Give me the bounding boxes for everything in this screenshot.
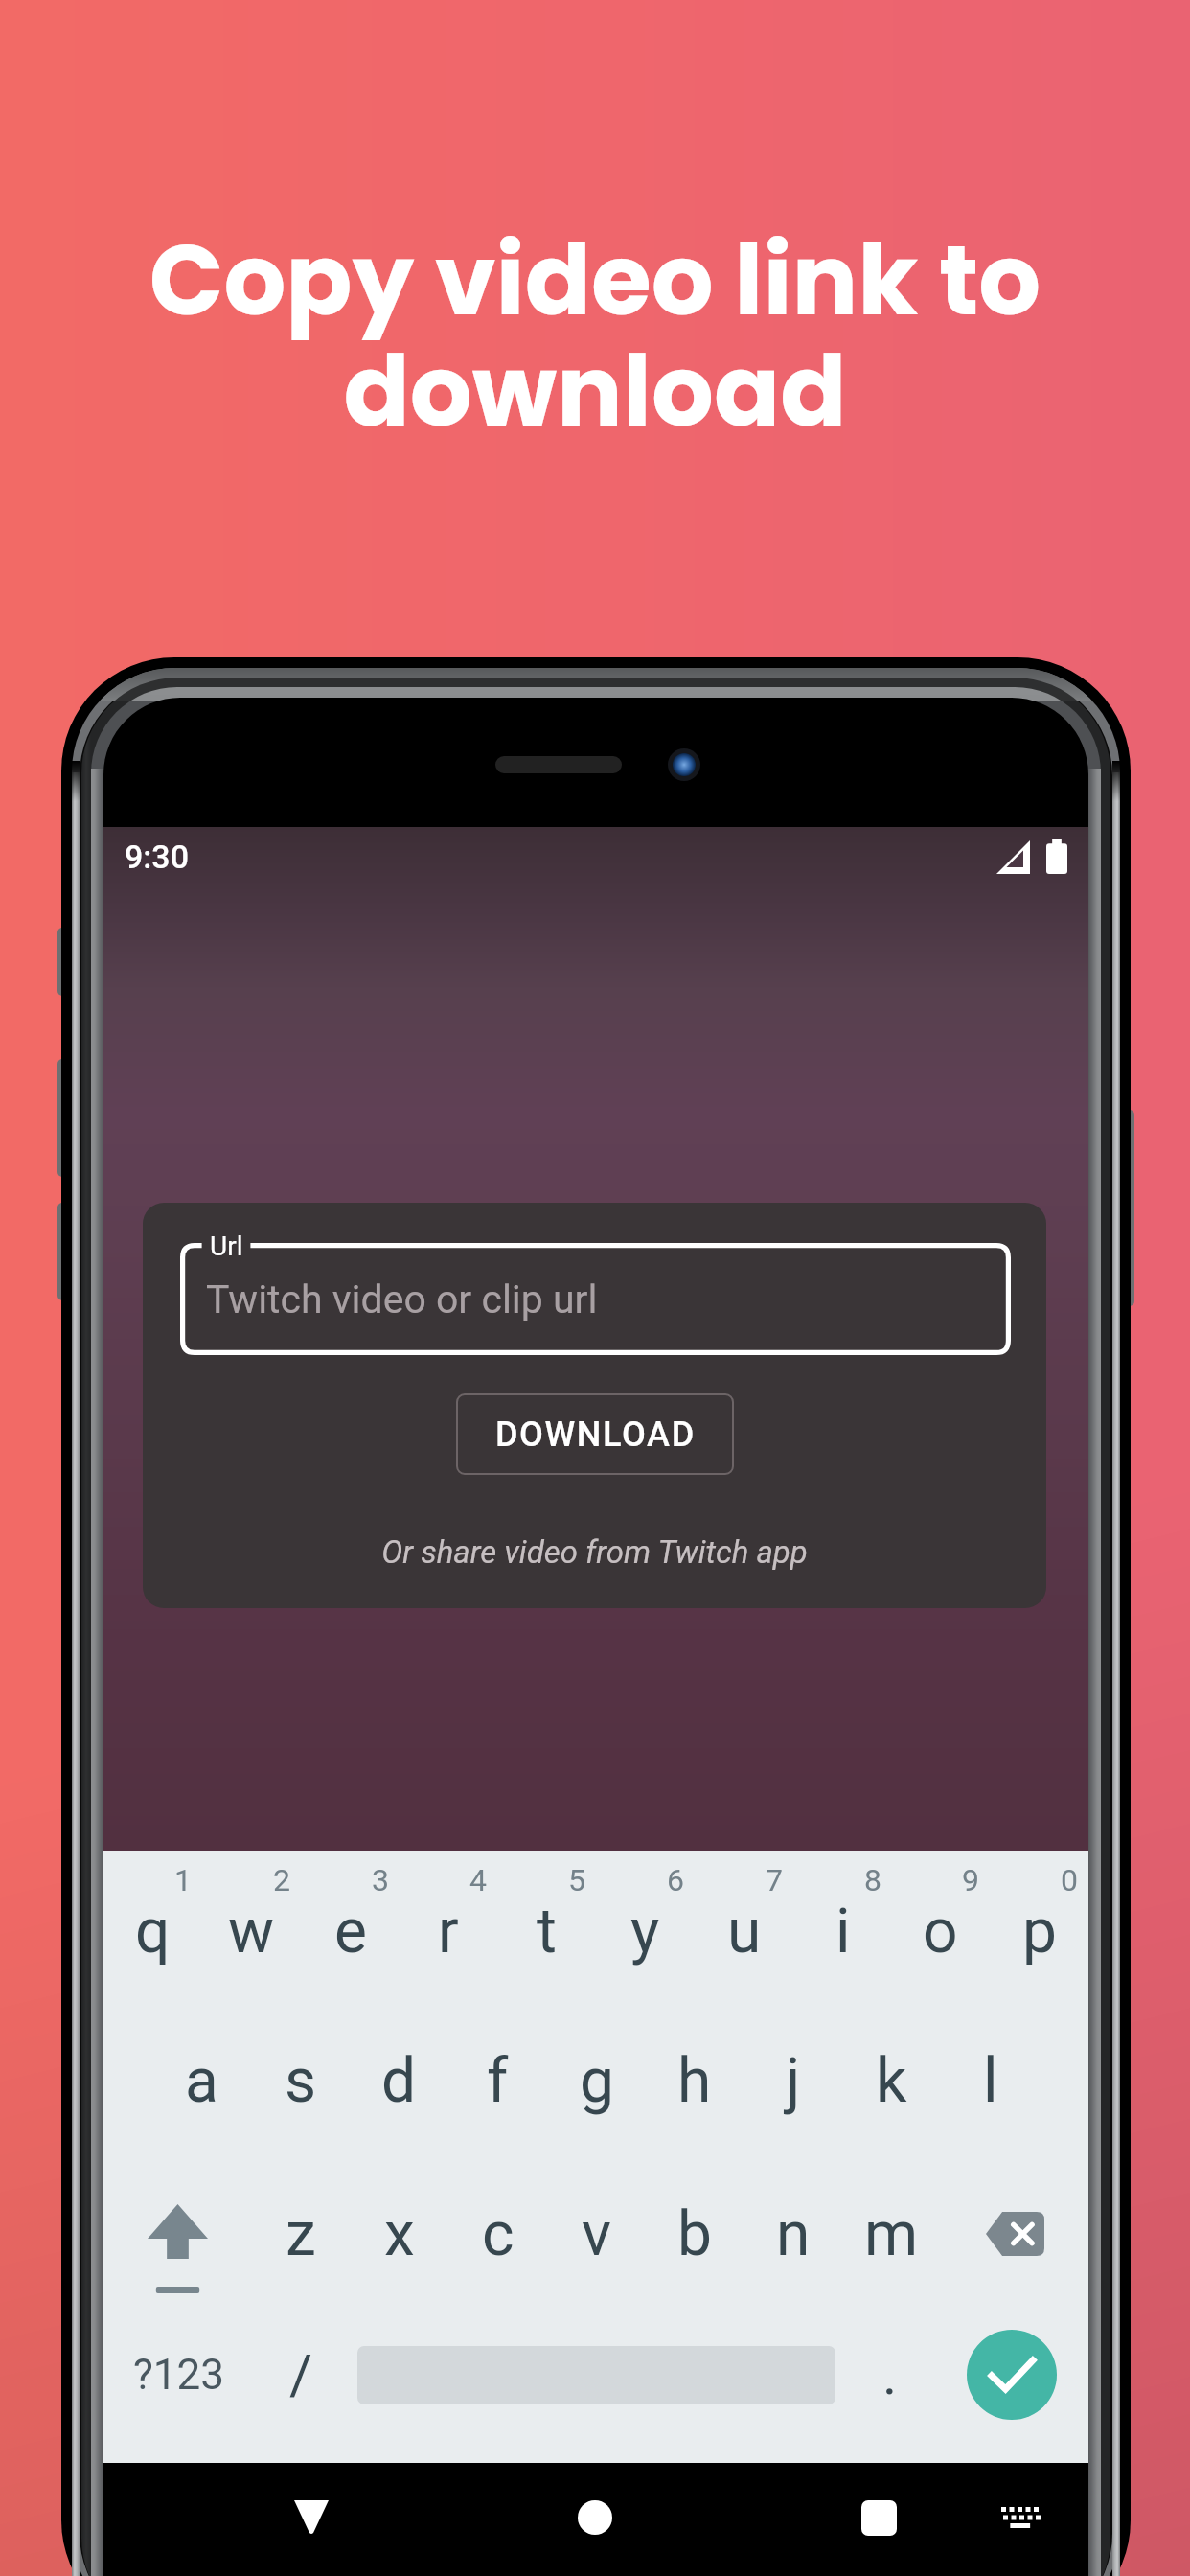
button[interactable]: Space (357, 2298, 835, 2451)
button[interactable]: ?123 (102, 2298, 255, 2451)
button[interactable]: 7 (695, 1851, 793, 2004)
staticText: m (864, 2198, 919, 2270)
staticText: o (923, 1896, 958, 1967)
staticText: q (135, 1896, 171, 1967)
staticText: 4 (469, 1862, 487, 1898)
button[interactable]: Twitch video or clip url (180, 1243, 1011, 1355)
button[interactable]: d (350, 2004, 448, 2157)
button[interactable]: Recent apps (783, 2464, 974, 2571)
staticText: i (835, 1896, 851, 1967)
button[interactable]: 0 (990, 1851, 1088, 2004)
staticText: . (882, 2342, 898, 2407)
staticText: n (776, 2198, 811, 2270)
staticText: 1 (174, 1862, 192, 1898)
staticText: c (482, 2198, 515, 2270)
staticText: f (487, 2045, 509, 2117)
button[interactable]: Back (216, 2464, 407, 2571)
staticText: Twitch video or clip url (206, 1276, 598, 1322)
button[interactable]: Switch keyboard (963, 2464, 1078, 2571)
button[interactable]: k (842, 2004, 941, 2157)
button[interactable]: h (645, 2004, 744, 2157)
button[interactable]: 9 (891, 1851, 990, 2004)
button[interactable]: / (253, 2298, 349, 2451)
staticText: 5 (568, 1862, 585, 1898)
button[interactable]: 5 (497, 1851, 596, 2004)
button[interactable]: f (448, 2004, 547, 2157)
staticText: w (228, 1896, 275, 1967)
staticText: y (630, 1896, 660, 1967)
staticText: v (582, 2198, 611, 2270)
button[interactable]: a (152, 2004, 251, 2157)
staticText: 9 (962, 1862, 979, 1898)
staticText: 7 (766, 1862, 783, 1898)
staticText: a (185, 2045, 218, 2117)
button[interactable]: v (547, 2157, 646, 2311)
staticText: u (727, 1896, 762, 1967)
staticText: j (786, 2045, 801, 2117)
button[interactable]: 6 (596, 1851, 695, 2004)
staticText: z (286, 2198, 316, 2270)
button[interactable]: c (448, 2157, 547, 2311)
staticText: s (285, 2045, 317, 2117)
staticText: Or share video from Twitch app (143, 1533, 1046, 1571)
button[interactable]: m (842, 2157, 941, 2311)
button[interactable]: j (744, 2004, 842, 2157)
staticText: 2 (273, 1862, 290, 1898)
button[interactable]: 3 (301, 1851, 400, 2004)
button[interactable]: DOWNLOAD (456, 1393, 734, 1475)
staticText: t (537, 1896, 557, 1967)
staticText: e (334, 1896, 367, 1967)
button[interactable]: . (842, 2298, 938, 2451)
staticText: 0 (1061, 1862, 1078, 1898)
staticText: DOWNLOAD (495, 1414, 696, 1455)
button[interactable]: l (941, 2004, 1040, 2157)
button[interactable]: b (645, 2157, 744, 2311)
staticText: 8 (864, 1862, 881, 1898)
button[interactable]: Shift (103, 2157, 251, 2311)
button[interactable]: g (547, 2004, 646, 2157)
staticText: 6 (667, 1862, 684, 1898)
staticText: l (983, 2045, 998, 2117)
button[interactable]: Home (499, 2464, 691, 2571)
staticText: 3 (372, 1862, 389, 1898)
button[interactable]: Backspace (941, 2157, 1088, 2311)
staticText: k (876, 2045, 907, 2117)
staticText: p (1022, 1896, 1057, 1967)
staticText: b (677, 2198, 712, 2270)
staticText: / (289, 2342, 312, 2407)
staticText: x (384, 2198, 415, 2270)
staticText: 9:30 (125, 838, 189, 876)
button[interactable]: 2 (202, 1851, 301, 2004)
button[interactable]: Enter (954, 2298, 1069, 2451)
button[interactable]: n (744, 2157, 842, 2311)
staticText: h (677, 2045, 712, 2117)
staticText: r (438, 1896, 459, 1967)
button[interactable]: 1 (103, 1851, 202, 2004)
button[interactable]: 4 (399, 1851, 497, 2004)
staticText: Copy video link to download (0, 212, 1190, 460)
staticText: Url (210, 1230, 243, 1262)
button[interactable]: x (350, 2157, 448, 2311)
button[interactable]: 8 (793, 1851, 892, 2004)
button[interactable]: z (251, 2157, 350, 2311)
button[interactable]: s (251, 2004, 350, 2157)
staticText: ?123 (133, 2350, 224, 2400)
staticText: d (381, 2045, 417, 2117)
staticText: g (580, 2045, 614, 2117)
